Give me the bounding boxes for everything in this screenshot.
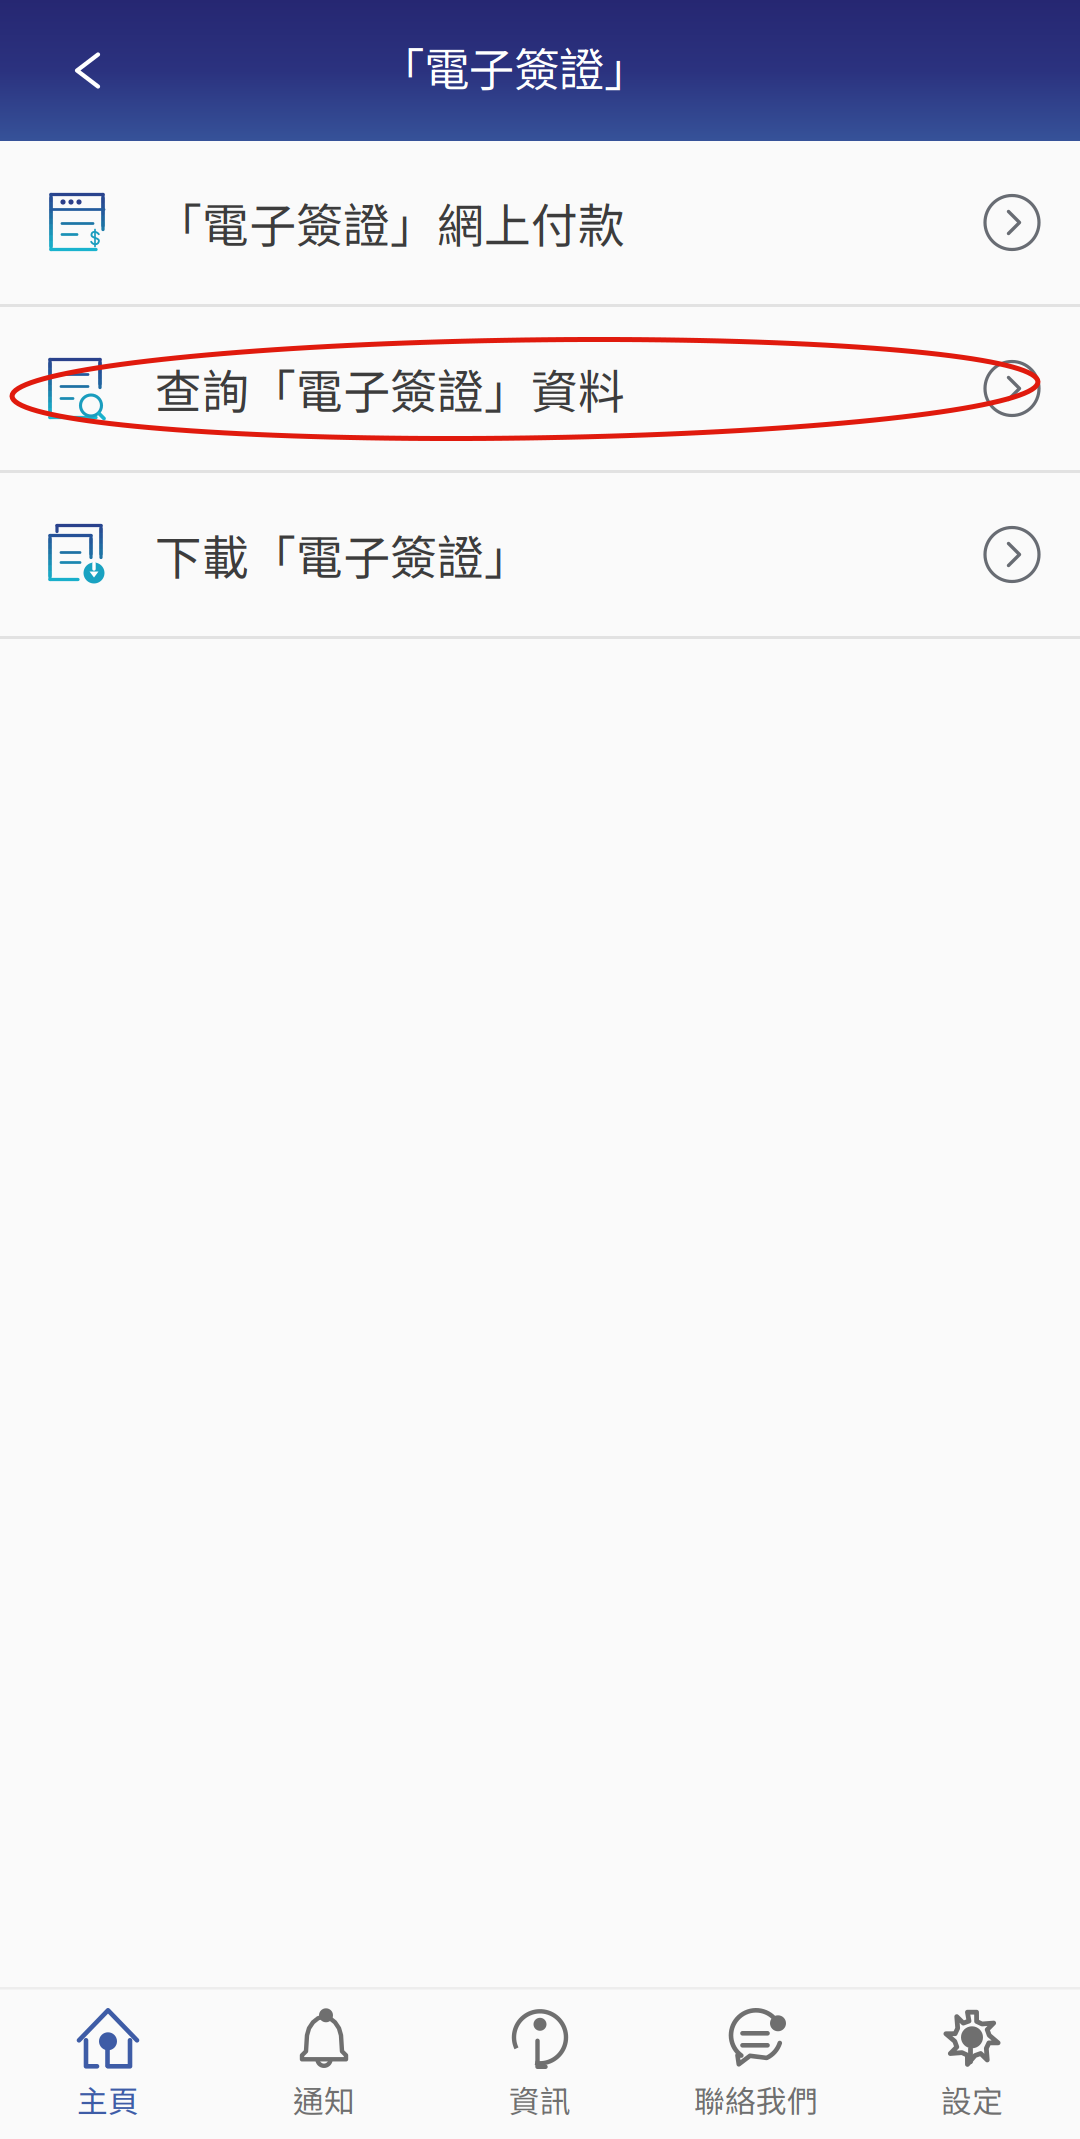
staticText: 通知 (293, 2077, 355, 2122)
staticText: 「電子簽證」 (379, 34, 649, 99)
button[interactable]: 設定 (864, 1989, 1080, 2139)
staticText: 「電子簽證」網上付款 (155, 189, 625, 256)
button[interactable]: 下載「電子簽證」 (0, 473, 1080, 636)
button[interactable]: 主頁 (0, 1989, 216, 2139)
button[interactable]: 聯絡我們 (648, 1989, 864, 2139)
button[interactable]: Back (0, 0, 175, 141)
button[interactable]: 查詢「電子簽證」資料 (0, 307, 1080, 470)
staticText: 查詢「電子簽證」資料 (155, 355, 625, 422)
staticText: 資訊 (509, 2077, 571, 2122)
staticText: 設定 (941, 2077, 1003, 2122)
button[interactable]: 通知 (216, 1989, 432, 2139)
button[interactable]: 資訊 (432, 1989, 648, 2139)
staticText: 下載「電子簽證」 (155, 521, 531, 588)
staticText: 主頁 (77, 2077, 139, 2122)
staticText: 聯絡我們 (694, 2077, 818, 2122)
button[interactable]: 「電子簽證」網上付款 (0, 141, 1080, 304)
